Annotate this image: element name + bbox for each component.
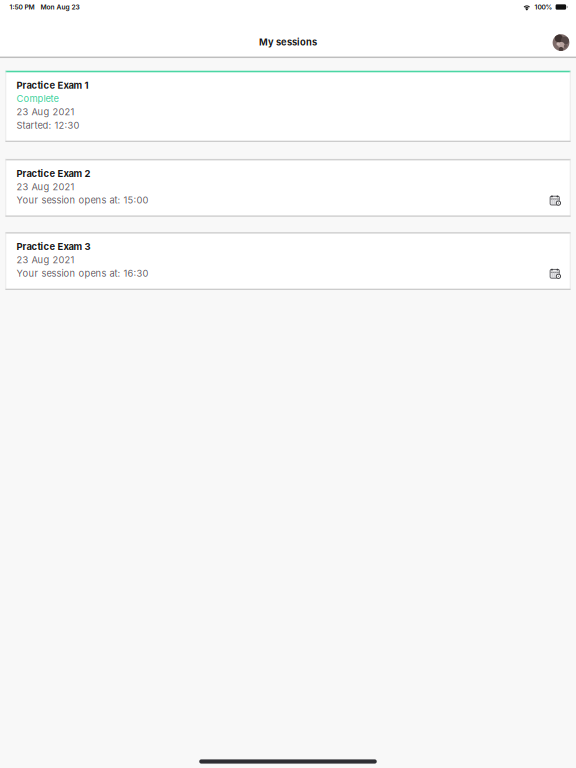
staticText: Practice Exam 3 <box>16 241 90 252</box>
staticText: Your session opens at: 15:00 <box>16 194 148 206</box>
staticText: My sessions <box>259 36 317 48</box>
staticText: Complete <box>16 93 58 104</box>
button[interactable]: Account <box>549 30 573 55</box>
staticText: Practice Exam 2 <box>16 168 90 179</box>
staticText: 1:50 PM <box>9 3 34 11</box>
button[interactable]: Practice Exam 3 <box>5 232 570 290</box>
button[interactable]: Practice Exam 2 <box>5 159 570 217</box>
staticText: 100% <box>535 3 553 11</box>
staticText: Your session opens at: 16:30 <box>16 268 148 279</box>
staticText: Practice Exam 1 <box>16 80 88 91</box>
staticText: Mon Aug 23 <box>40 3 79 11</box>
staticText: 23 Aug 2021 <box>16 181 74 192</box>
staticText: Started: 12:30 <box>16 120 79 131</box>
staticText: 23 Aug 2021 <box>16 254 74 266</box>
button[interactable]: Practice Exam 1 <box>5 71 570 142</box>
staticText: 23 Aug 2021 <box>16 106 74 118</box>
